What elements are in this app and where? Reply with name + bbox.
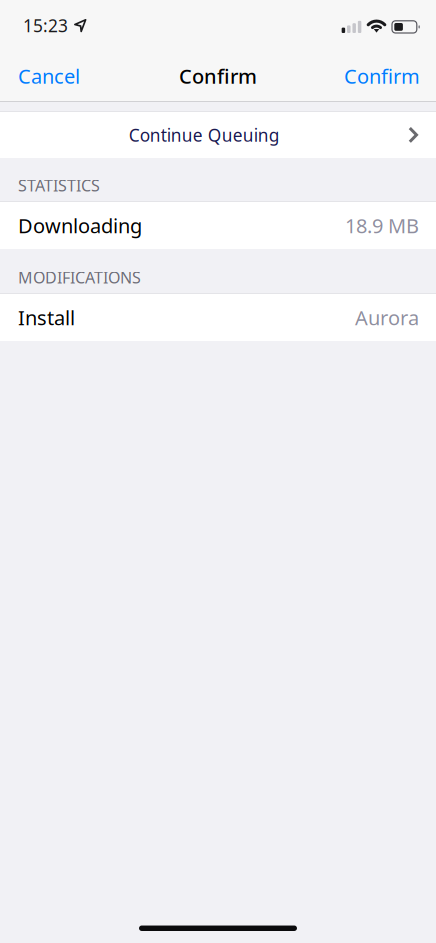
staticText: Confirm [179,63,257,89]
staticText: STATISTICS [18,175,100,196]
staticText: Downloading [18,212,142,239]
staticText: Cancel [18,63,80,89]
button[interactable]: Cancel [0,50,98,102]
staticText: Aurora [355,304,419,331]
staticText: 15:23 [23,14,68,37]
staticText: Install [18,304,75,331]
staticText: Confirm [344,63,420,89]
staticText: Continue Queuing [129,123,280,146]
button[interactable]: Confirm [328,50,436,102]
button[interactable]: Continue Queuing [0,111,436,158]
staticText: 18.9 MB [345,212,419,239]
staticText: MODIFICATIONS [18,267,141,288]
